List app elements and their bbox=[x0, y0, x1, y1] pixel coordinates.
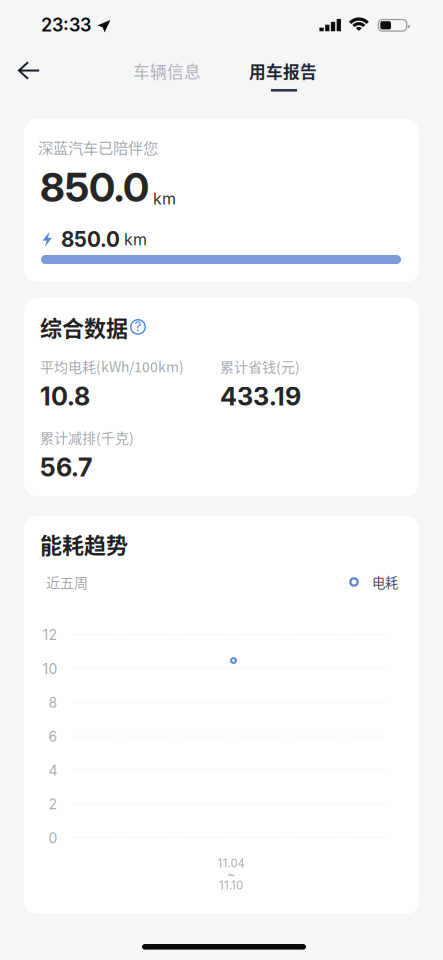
staticText: 433.19 bbox=[220, 381, 301, 412]
staticText: 深蓝汽车已陪伴您 bbox=[38, 136, 158, 158]
staticText: 56.7 bbox=[40, 452, 93, 483]
staticText: 0 bbox=[48, 830, 57, 846]
staticText: 累计减排(千克) bbox=[40, 427, 134, 447]
staticText: 累计省钱(元) bbox=[220, 356, 300, 376]
button[interactable]: 用车报告 bbox=[241, 48, 325, 96]
staticText: 能耗趋势 bbox=[40, 528, 128, 560]
staticText: 10.8 bbox=[40, 381, 90, 412]
button[interactable]: 车辆信息 bbox=[125, 48, 209, 88]
staticText: 车辆信息 bbox=[133, 59, 201, 83]
button[interactable]: Back bbox=[0, 48, 51, 98]
button[interactable]: Info bbox=[128, 316, 148, 338]
staticText: ~ bbox=[227, 868, 234, 881]
staticText: 平均电耗(kWh/100km) bbox=[40, 356, 184, 376]
staticText: ? bbox=[134, 318, 141, 334]
staticText: 12 bbox=[42, 626, 57, 643]
staticText: 综合数据 bbox=[40, 311, 128, 343]
staticText: 2 bbox=[48, 796, 57, 813]
staticText: 近五周 bbox=[46, 572, 88, 592]
staticText: km bbox=[124, 230, 147, 249]
staticText: km bbox=[153, 189, 176, 208]
staticText: 11.04 bbox=[217, 857, 244, 870]
staticText: 6 bbox=[48, 728, 57, 745]
staticText: 10 bbox=[42, 660, 57, 677]
staticText: 11.10 bbox=[219, 879, 243, 892]
staticText: 8 bbox=[48, 694, 57, 711]
staticText: 用车报告 bbox=[249, 59, 317, 83]
staticText: 电耗 bbox=[372, 572, 398, 592]
staticText: 23:33 bbox=[41, 14, 91, 36]
staticText: 4 bbox=[48, 762, 57, 779]
staticText: 850.0 bbox=[61, 227, 120, 252]
staticText: 850.0 bbox=[40, 163, 149, 211]
